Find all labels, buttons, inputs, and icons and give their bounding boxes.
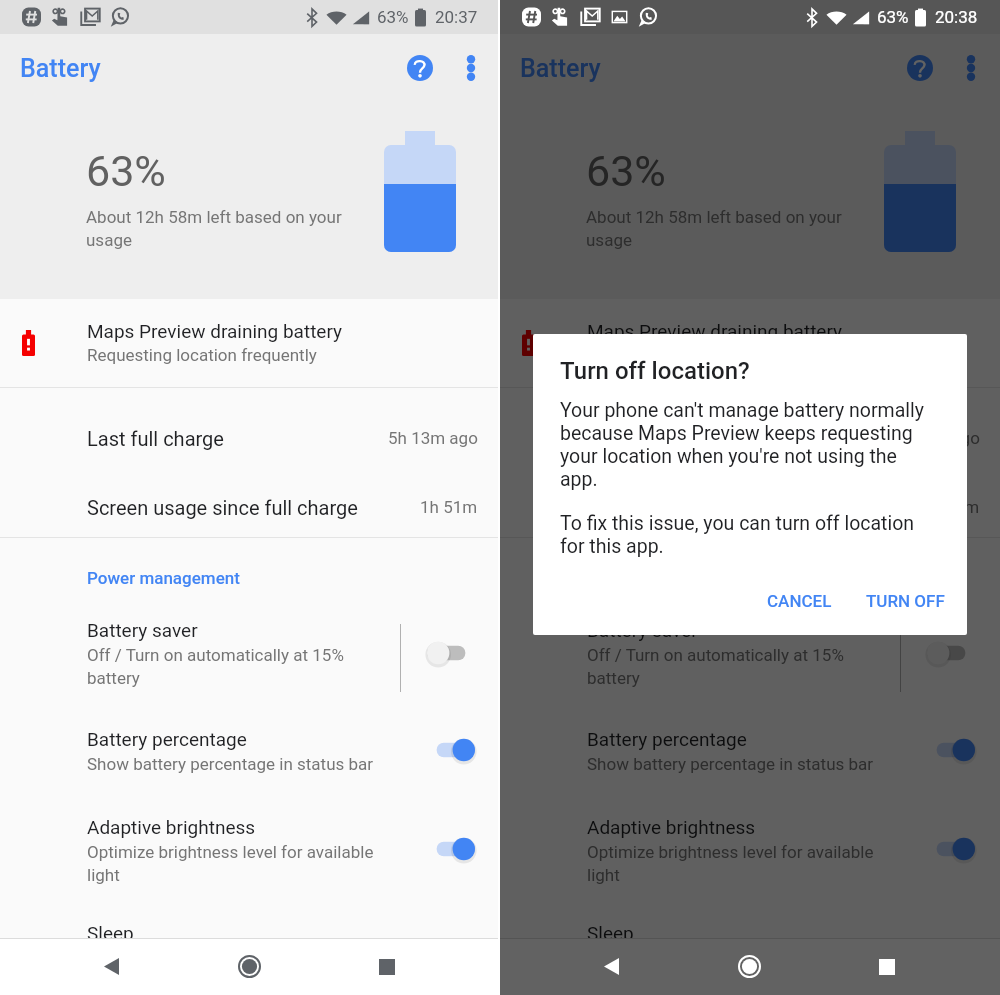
staticText: Last full charge [87,427,224,450]
staticText: Screen usage since full charge [587,496,858,519]
button[interactable]: More options [951,48,991,88]
staticText: 63% [86,146,166,196]
staticText: About 12h 58m left based on your usage [86,207,352,250]
staticText: CANCEL [767,591,832,611]
button[interactable]: Recent apps [357,938,417,995]
staticText: Requesting location frequently [587,345,817,365]
button[interactable]: Back [81,938,141,995]
staticText: Sleep [587,922,634,938]
staticText: Sleep [87,922,134,938]
staticText: Adaptive brightness [87,816,256,838]
button[interactable]: Home [219,938,279,995]
staticText: Screen usage since full charge [87,496,358,519]
button[interactable]: Last full charge [500,400,1000,476]
staticText: 1h 51m [420,497,478,517]
staticText: Maps Preview draining battery [87,320,343,342]
staticText: 63% [877,7,909,27]
button[interactable]: Help [900,48,940,88]
button[interactable]: Home [719,938,779,995]
staticText: 20:38 [935,7,978,27]
button[interactable]: Battery percentage [915,726,987,774]
staticText: Optimize brightness level for available … [587,842,882,885]
button[interactable]: Maps Preview draining battery [500,299,1000,387]
button[interactable]: Back [581,938,641,995]
staticText: 63% [377,7,409,27]
staticText: Battery percentage [87,728,247,750]
staticText: 63% [586,146,666,196]
button[interactable]: Battery saver [915,629,987,677]
button[interactable]: Recent apps [857,938,917,995]
staticText: 5h 13m ago [388,428,478,448]
staticText: Power management [87,568,240,588]
staticText: About 12h 58m left based on your usage [586,207,852,250]
button[interactable]: Last full charge [0,400,498,476]
staticText: Battery saver [587,619,698,641]
staticText: Requesting location frequently [87,345,317,365]
staticText: Battery [520,54,601,83]
staticText: Adaptive brightness [587,816,756,838]
button[interactable]: Screen usage since full charge [0,470,498,544]
button[interactable]: CANCEL [755,581,844,621]
staticText: Your phone can't manage battery normally… [560,399,932,491]
staticText: Maps Preview draining battery [587,320,843,342]
button[interactable]: Adaptive brightness [415,825,487,873]
button[interactable]: Battery percentage [415,726,487,774]
staticText: Show battery percentage in status bar [87,754,387,774]
button[interactable]: TURN OFF [854,581,957,621]
button[interactable]: Maps Preview draining battery [0,299,498,387]
staticText: Battery saver [87,619,198,641]
staticText: 1h 51m [922,497,980,517]
staticText: Optimize brightness level for available … [87,842,382,885]
staticText: Battery percentage [587,728,747,750]
staticText: Show battery percentage in status bar [587,754,887,774]
staticText: 20:37 [435,7,478,27]
staticText: TURN OFF [866,591,945,611]
button[interactable]: More options [451,48,491,88]
staticText: Last full charge [587,427,724,450]
button[interactable]: Battery saver [415,629,487,677]
button[interactable]: Adaptive brightness [915,825,987,873]
staticText: Turn off location? [560,357,750,385]
staticText: 5h 13m ago [890,428,980,448]
staticText: Battery [20,54,101,83]
button[interactable]: Help [400,48,440,88]
staticText: To fix this issue, you can turn off loca… [560,512,932,558]
staticText: Off / Turn on automatically at 15% batte… [587,645,862,688]
staticText: Off / Turn on automatically at 15% batte… [87,645,362,688]
button[interactable]: Screen usage since full charge [500,470,1000,544]
